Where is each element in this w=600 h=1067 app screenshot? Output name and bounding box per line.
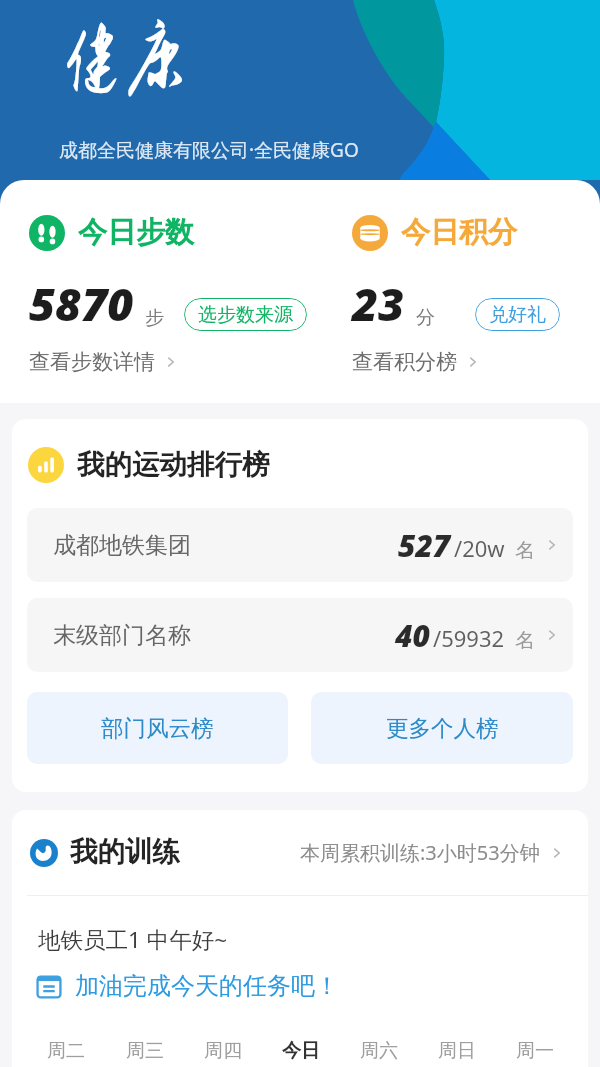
staticText: 查看积分榜 xyxy=(352,349,457,375)
staticText: 周六 xyxy=(360,1039,398,1063)
button[interactable]: 周日 xyxy=(418,1035,496,1067)
staticText: 健康 xyxy=(60,16,187,104)
staticText: 今日 xyxy=(282,1039,320,1063)
staticText: 选步数来源 xyxy=(198,303,293,327)
staticText: 地铁员工1 中午好~ xyxy=(38,924,228,955)
staticText: 名 xyxy=(515,538,535,563)
staticText: 末级部门名称 xyxy=(53,621,191,650)
button[interactable]: 周六 xyxy=(340,1035,418,1067)
staticText: 加油完成今天的任务吧！ xyxy=(75,971,339,1001)
staticText: 名 xyxy=(515,628,535,653)
button[interactable]: 周四 xyxy=(184,1035,262,1067)
staticText: 23 xyxy=(352,273,405,334)
staticText: 我的运动排行榜 xyxy=(77,448,270,483)
button[interactable]: 本周累积训练:3小时53分钟 xyxy=(300,839,564,866)
staticText: /20w xyxy=(454,533,505,563)
button[interactable]: 选步数来源 xyxy=(184,298,307,331)
staticText: 兑好礼 xyxy=(489,303,546,327)
staticText: 周三 xyxy=(126,1039,164,1063)
staticText: 成都地铁集团 xyxy=(53,531,191,560)
button[interactable]: 兑好礼 xyxy=(475,298,560,331)
button[interactable]: 查看步数详情 xyxy=(29,349,178,375)
staticText: 我的训练 xyxy=(70,835,180,870)
staticText: 周日 xyxy=(438,1039,476,1063)
staticText: /59932 xyxy=(433,623,505,653)
button[interactable]: 今日 xyxy=(262,1035,340,1067)
staticText: 今日步数 xyxy=(78,214,194,251)
staticText: 周二 xyxy=(47,1039,85,1063)
button[interactable]: 末级部门名称 xyxy=(27,598,573,672)
staticText: 分 xyxy=(416,306,435,330)
staticText: 成都全民健康有限公司·全民健康GO xyxy=(59,137,359,163)
button[interactable]: 成都地铁集团 xyxy=(27,508,573,582)
button[interactable]: 周一 xyxy=(496,1035,574,1067)
staticText: 周四 xyxy=(204,1039,242,1063)
staticText: 步 xyxy=(145,306,164,330)
button[interactable]: 周三 xyxy=(105,1035,184,1067)
staticText: 更多个人榜 xyxy=(386,714,499,742)
staticText: 周一 xyxy=(516,1039,554,1063)
button[interactable]: 查看积分榜 xyxy=(352,349,480,375)
button[interactable]: 部门风云榜 xyxy=(27,692,288,764)
staticText: 527 xyxy=(398,525,451,566)
button[interactable]: 周二 xyxy=(26,1035,105,1067)
staticText: 40 xyxy=(395,615,430,656)
staticText: 部门风云榜 xyxy=(101,714,214,742)
staticText: 5870 xyxy=(29,273,134,334)
button[interactable]: 更多个人榜 xyxy=(311,692,573,764)
staticText: 查看步数详情 xyxy=(29,349,155,375)
staticText: 本周累积训练:3小时53分钟 xyxy=(300,839,540,866)
staticText: 今日积分 xyxy=(401,214,517,251)
